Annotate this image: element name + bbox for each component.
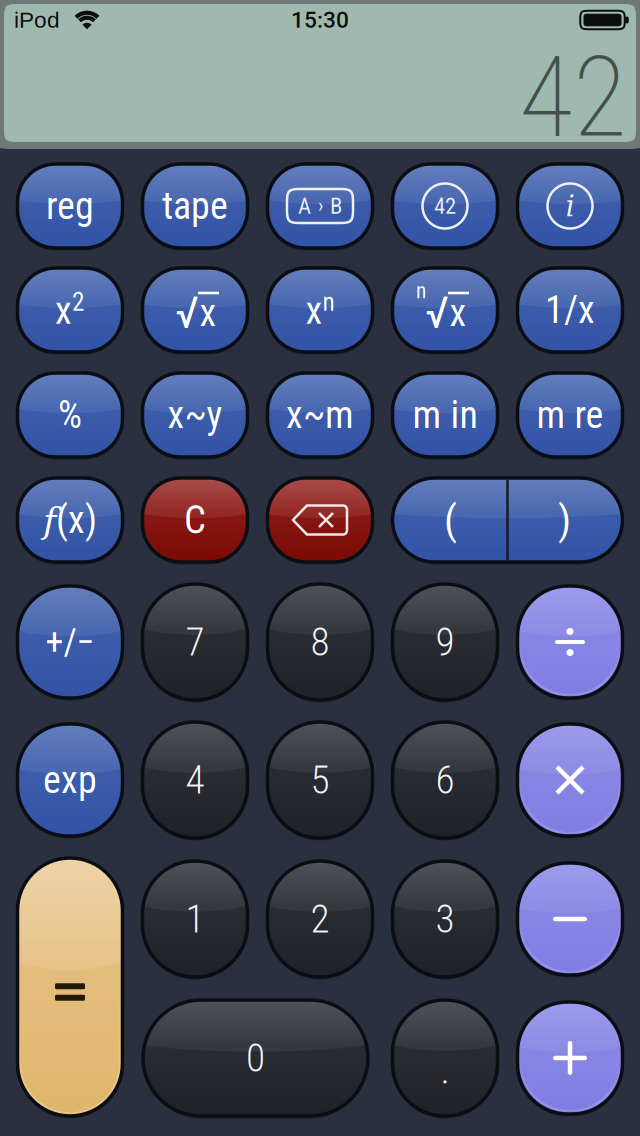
staticText: 7 [185,619,204,665]
staticText: xn [305,288,334,332]
staticText: ( [444,496,457,544]
staticText: +/− [45,621,94,663]
staticText: n [416,278,426,303]
staticText: 3 [435,896,454,942]
staticText: √ [425,287,449,339]
staticText: B [330,193,342,219]
staticText: x~y [167,393,222,437]
staticText: iPod [14,7,60,33]
staticText: 42 [434,193,456,219]
staticText: 2 [310,896,329,942]
staticText: ) [558,496,571,544]
staticText: 8 [310,619,329,665]
staticText: tape [162,184,228,228]
staticText: m in [412,393,477,437]
staticText: 9 [435,619,454,665]
staticText: 1 [185,896,204,942]
staticText: 0 [246,1035,265,1081]
staticText: √ [175,287,199,339]
staticText: . [440,1047,449,1093]
staticText: % [58,393,82,437]
staticText: reg [46,184,94,228]
staticText: x [199,291,216,335]
staticText: C [184,497,206,543]
staticText: 4 [185,757,204,803]
staticText: x [449,291,466,335]
staticText: 6 [435,757,454,803]
staticText: 15:30 [291,7,349,33]
staticText: exp [43,758,97,802]
staticText: 5 [310,757,329,803]
staticText: 1/x [545,288,595,332]
staticText: m re [536,393,603,437]
staticText: 42 [519,32,627,163]
staticText: i [565,189,574,223]
staticText: x~m [286,393,354,437]
staticText: › [318,194,323,218]
staticText: A [298,193,311,219]
staticText: x2 [55,288,85,332]
staticText: f(x) [43,498,97,542]
